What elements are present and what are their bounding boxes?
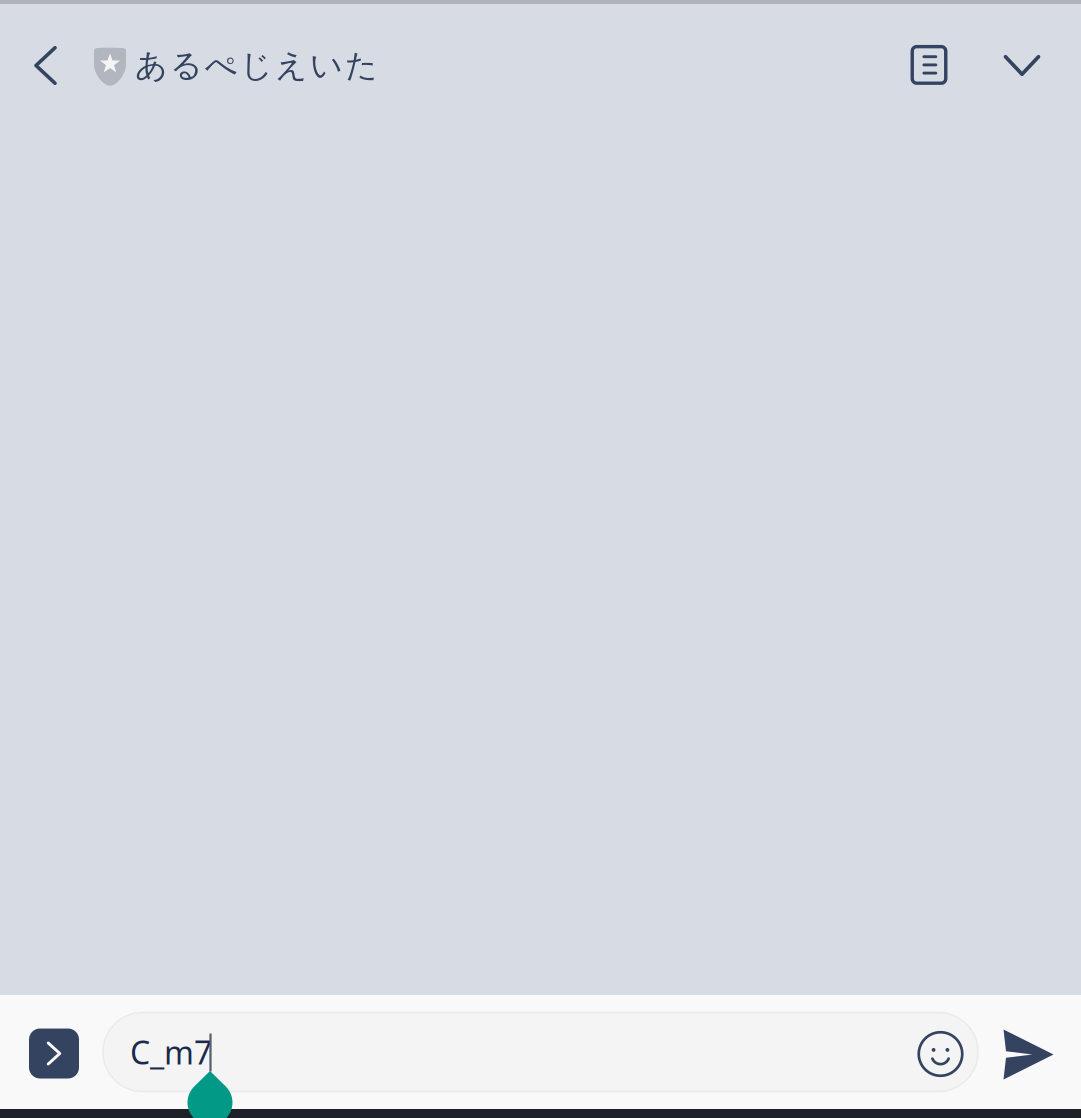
button[interactable]: Send bbox=[987, 1012, 1067, 1091]
button[interactable]: Emoji bbox=[899, 1012, 978, 1091]
button[interactable]: C_m7 bbox=[103, 1012, 899, 1091]
button[interactable]: Notes bbox=[899, 26, 959, 104]
button[interactable]: Expand toolbar bbox=[29, 1027, 79, 1077]
button[interactable]: Collapse bbox=[992, 26, 1052, 104]
staticText: あるぺじえいた bbox=[135, 46, 378, 85]
staticText: C_m7 bbox=[130, 1031, 212, 1073]
button[interactable]: Back bbox=[10, 26, 81, 104]
